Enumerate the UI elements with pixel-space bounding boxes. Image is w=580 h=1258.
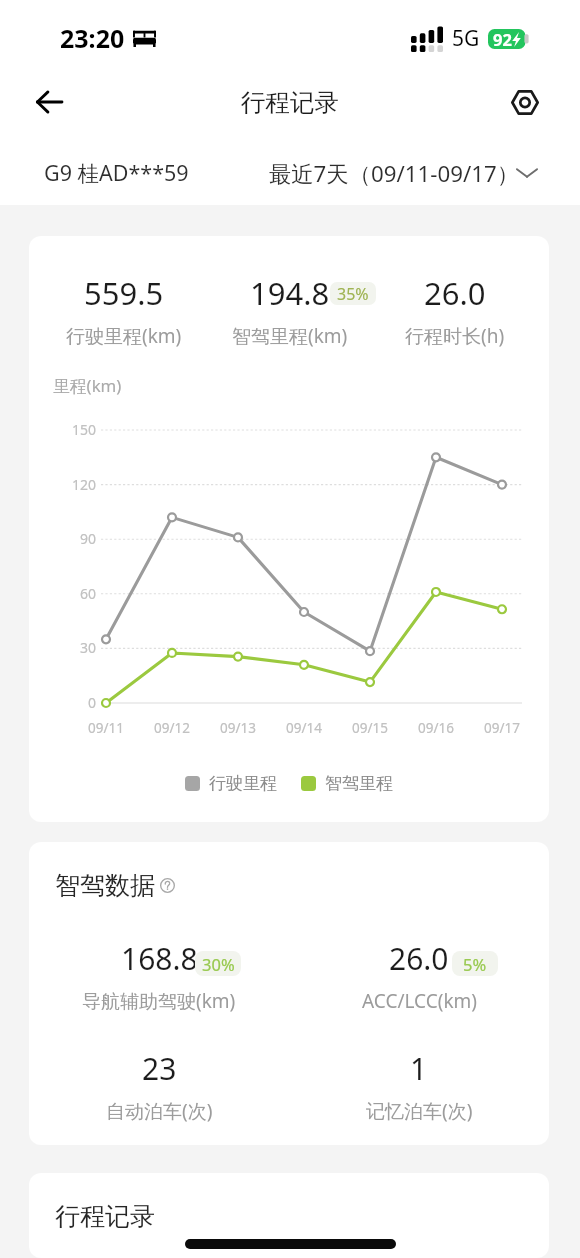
staticText: 60 bbox=[45, 584, 96, 603]
staticText: 最近7天（09/11-09/17） bbox=[269, 158, 520, 188]
staticText: 194.8 bbox=[250, 272, 330, 314]
staticText: 自动泊车(次) bbox=[106, 1098, 213, 1124]
staticText: 30 bbox=[45, 638, 96, 657]
staticText: 09/15 bbox=[340, 719, 400, 737]
staticText: 26.0 bbox=[424, 272, 486, 314]
staticText: 23:20 bbox=[60, 21, 125, 55]
staticText: 90 bbox=[45, 529, 96, 548]
staticText: 行程记录 bbox=[241, 87, 339, 118]
staticText: 5G bbox=[452, 24, 480, 53]
staticText: 30% bbox=[202, 953, 235, 975]
staticText: 行程记录 bbox=[55, 1201, 155, 1232]
staticText: 记忆泊车(次) bbox=[366, 1098, 473, 1124]
staticText: 导航辅助驾驶(km) bbox=[82, 988, 236, 1014]
button[interactable]: Settings bbox=[500, 77, 550, 127]
staticText: 26.0 bbox=[389, 938, 449, 979]
staticText: 里程(km) bbox=[53, 374, 122, 397]
staticText: 09/17 bbox=[472, 719, 532, 737]
staticText: 行程时长(h) bbox=[405, 323, 505, 349]
staticText: 智驾里程(km) bbox=[232, 323, 348, 349]
staticText: G9 桂AD***59 bbox=[44, 158, 189, 187]
staticText: 92 bbox=[493, 28, 512, 50]
staticText: 行驶里程(km) bbox=[66, 323, 182, 349]
staticText: 23 bbox=[142, 1048, 177, 1089]
staticText: 35% bbox=[337, 283, 369, 305]
button[interactable]: Back bbox=[23, 76, 75, 128]
staticText: 120 bbox=[45, 475, 96, 494]
staticText: 09/12 bbox=[142, 719, 202, 737]
staticText: 智驾数据 bbox=[55, 870, 155, 901]
staticText: 150 bbox=[45, 420, 96, 439]
staticText: 1 bbox=[410, 1048, 428, 1089]
staticText: 168.8 bbox=[121, 938, 198, 979]
staticText: 09/14 bbox=[274, 719, 334, 737]
staticText: 559.5 bbox=[84, 272, 164, 314]
staticText: 0 bbox=[45, 693, 96, 712]
staticText: 智驾里程 bbox=[325, 773, 393, 794]
button[interactable]: 最近7天（09/11-09/17） bbox=[252, 158, 538, 188]
staticText: 5% bbox=[463, 953, 487, 975]
staticText: ACC/LCC(km) bbox=[362, 988, 477, 1014]
staticText: 09/11 bbox=[76, 719, 136, 737]
staticText: 09/16 bbox=[406, 719, 466, 737]
staticText: 09/13 bbox=[208, 719, 268, 737]
staticText: 行驶里程 bbox=[209, 773, 277, 794]
